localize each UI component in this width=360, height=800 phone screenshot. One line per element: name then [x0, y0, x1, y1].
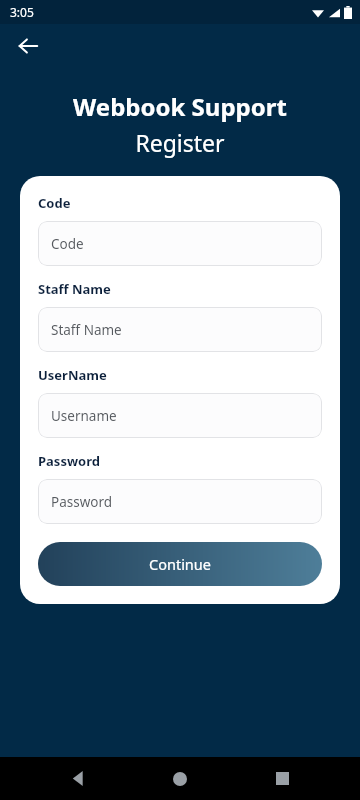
staticText: Code: [51, 235, 84, 253]
staticText: 3:05: [10, 4, 34, 20]
staticText: Staff Name: [51, 321, 122, 339]
staticText: Webbook Support: [73, 90, 287, 123]
staticText: Password: [38, 452, 100, 470]
button[interactable]: Username: [38, 393, 322, 438]
staticText: Register: [135, 127, 225, 158]
button[interactable]: Back: [54, 757, 102, 800]
staticText: Continue: [149, 554, 211, 574]
staticText: UserName: [38, 366, 107, 384]
staticText: Password: [51, 493, 113, 511]
staticText: Staff Name: [38, 280, 111, 298]
staticText: Code: [38, 194, 71, 212]
staticText: Username: [51, 407, 117, 425]
button[interactable]: Recents: [258, 757, 306, 800]
button[interactable]: Home: [156, 757, 204, 800]
button[interactable]: Code: [38, 221, 322, 266]
button[interactable]: Back: [8, 26, 48, 66]
button[interactable]: Password: [38, 479, 322, 524]
button[interactable]: Staff Name: [38, 307, 322, 352]
button[interactable]: Continue: [38, 542, 322, 586]
